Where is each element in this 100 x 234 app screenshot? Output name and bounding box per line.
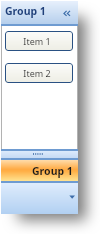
staticText: Item 2	[23, 67, 51, 79]
button[interactable]: Item 1	[5, 31, 73, 51]
staticText: Item 1	[23, 35, 51, 47]
button[interactable]: Group 1	[1, 1, 78, 24]
staticText: Group 1	[5, 4, 46, 18]
button[interactable]: Group 1	[1, 160, 78, 181]
staticText: Group 1	[32, 164, 73, 178]
button[interactable]: Collapse	[61, 8, 73, 18]
button[interactable]: Expand	[68, 193, 77, 201]
button[interactable]: Resize splitter	[1, 151, 78, 159]
button[interactable]: Item 2	[5, 63, 73, 83]
